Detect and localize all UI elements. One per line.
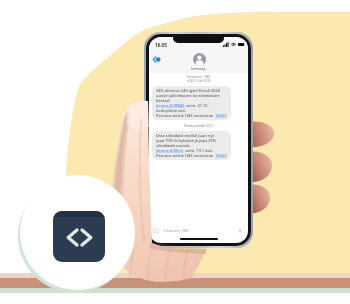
staticText: silmälasilinsseistä. [156,143,191,148]
staticText: kanssa! [156,98,171,103]
button[interactable]: Code [53,211,105,262]
staticText: keskiyöhön asti. [156,108,187,113]
staticText: Tänään päivällä 12.17 [149,124,248,128]
staticText: 16.05 [155,42,167,48]
staticText: lennox.fi/XMAS [156,103,185,108]
staticText: 18242 [215,113,227,118]
staticText: 34% alennus 24h ajan! Koodi 2024 [156,88,221,93]
button[interactable]: Lennoxsg › [191,53,207,71]
staticText: Peruuta viestit: LNF numeroon [156,113,215,118]
staticText: voim. 19.1 asti. [184,148,214,153]
staticText: Osta silmälasit meiltä! Juuri nyt [156,133,215,138]
button[interactable]: Osta silmälasit meiltä! Juuri nyt [156,133,227,158]
staticText: 18242 [215,153,227,158]
staticText: Tekstiviesti · SMS ti 28.11. klo 16.04 [149,75,248,83]
staticText: voim. 31.12. [185,103,209,108]
staticText: Lennoxsg › [191,67,207,71]
button[interactable]: Tekstiviesti · SMS [164,226,242,235]
staticText: Tekstiviesti · SMS [164,229,189,233]
button[interactable]: Add attachment [152,227,159,234]
staticText: lennox.fi/25nn [156,148,184,153]
staticText: uusien piilolinssien tai silmälasien [156,93,220,98]
staticText: Peruuta viestit: LNF numeroon [156,153,215,158]
button[interactable]: 34% alennus 24h ajan! Koodi 2024 [156,88,227,118]
button[interactable]: Back [151,54,162,65]
staticText: jopa 70% kehyksistä ja jopa 25% [156,138,217,143]
